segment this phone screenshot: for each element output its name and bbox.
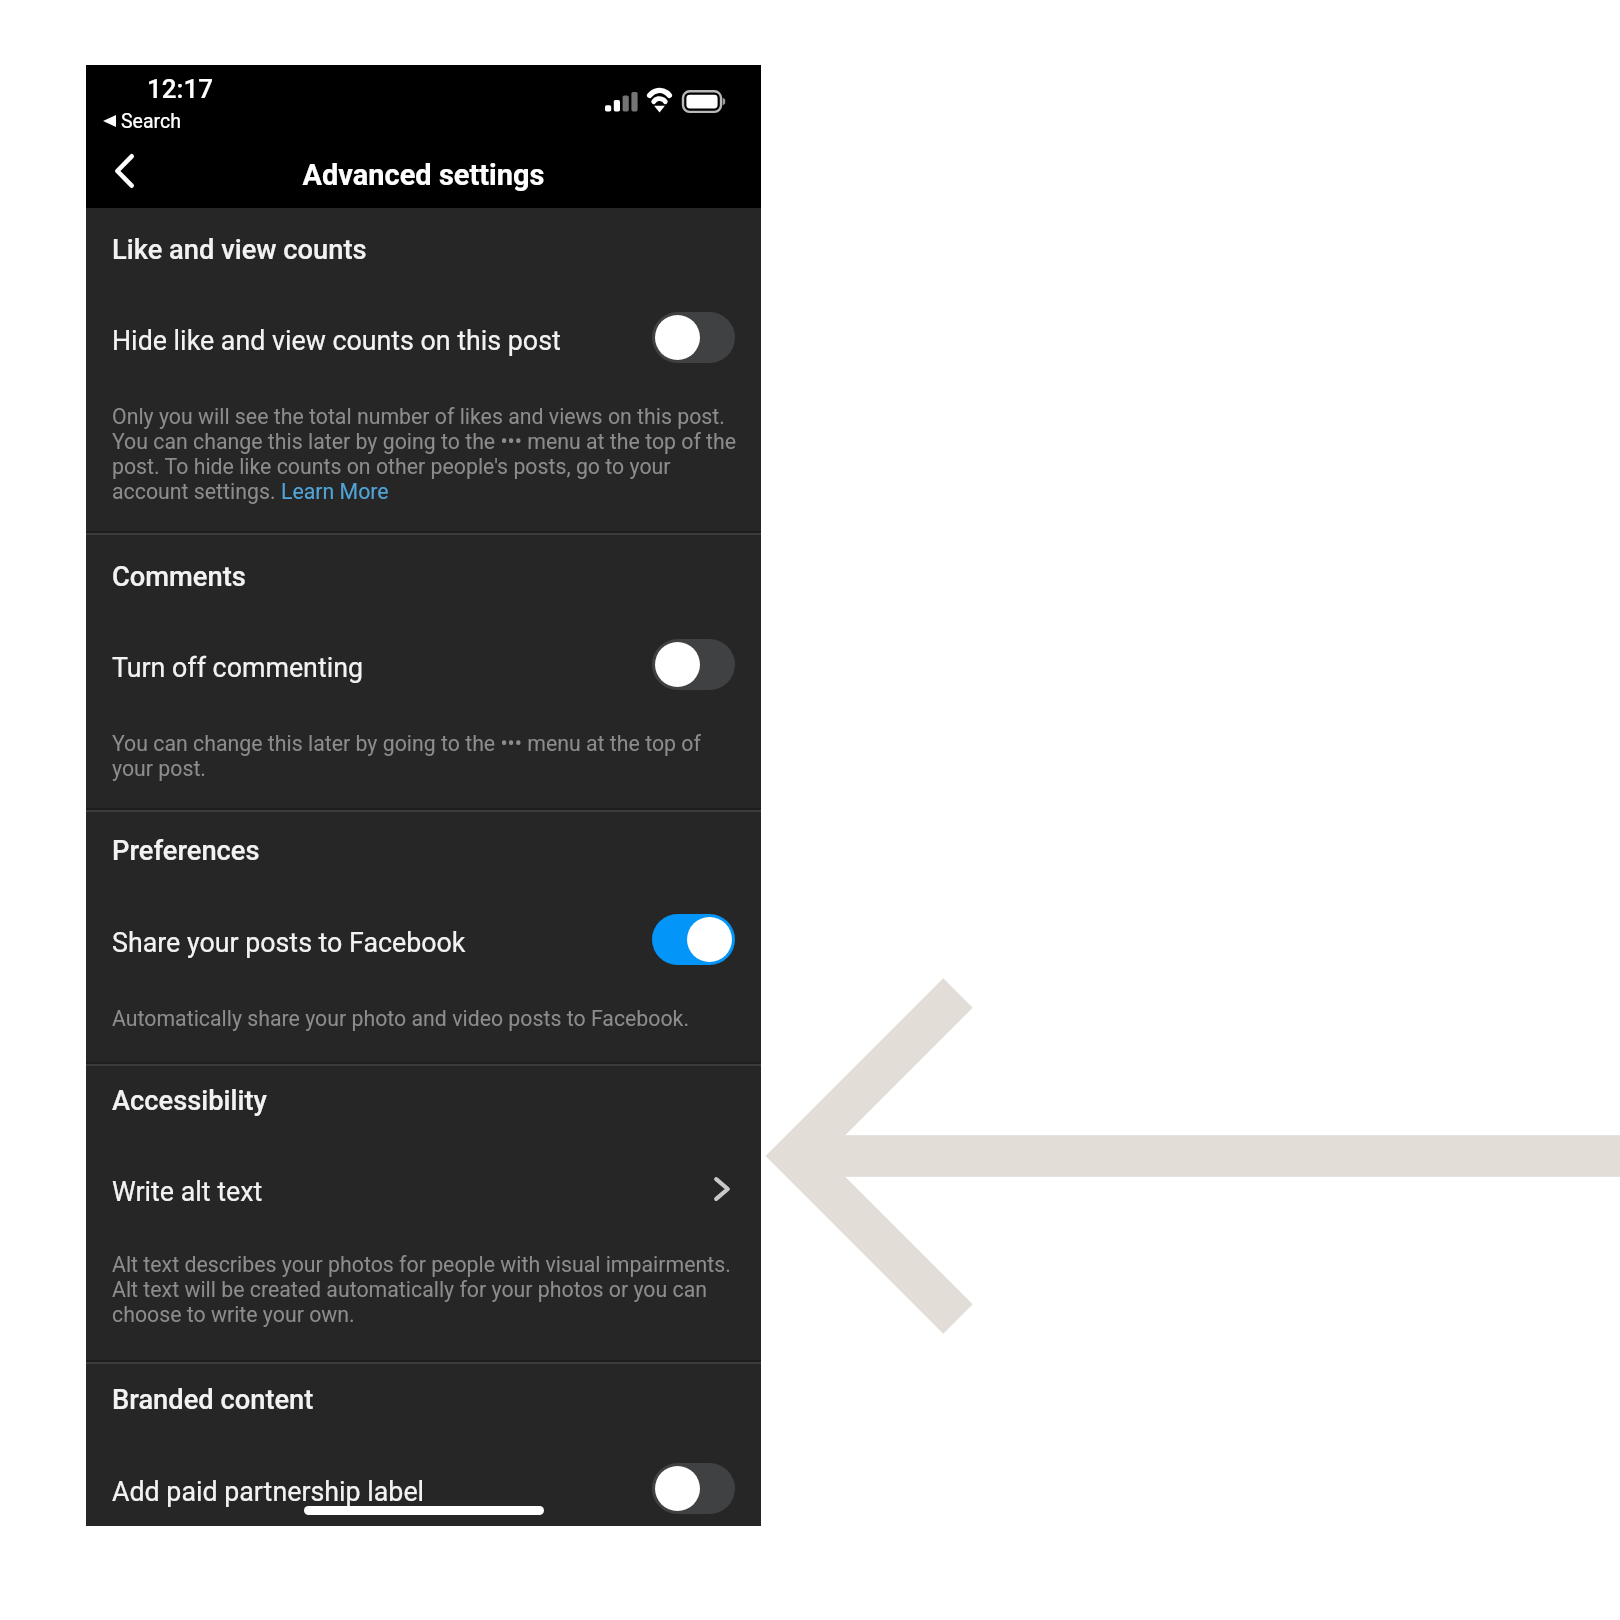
staticText: Alt text describes your photos for peopl… <box>112 1252 731 1277</box>
button[interactable]: Back <box>98 144 150 198</box>
staticText: choose to write your own. <box>112 1302 355 1327</box>
staticText: You can change this later by going to th… <box>112 731 701 756</box>
staticText: Branded content <box>112 1384 314 1416</box>
staticText: Hide like and view counts on this post <box>112 325 561 356</box>
button[interactable]: Turn off commenting <box>86 619 761 711</box>
button[interactable]: Hide like and view counts on this post, … <box>652 312 735 363</box>
staticText: Share your posts to Facebook <box>112 927 466 958</box>
button[interactable]: Hide like and view counts on this post <box>86 292 761 384</box>
button[interactable]: Search <box>101 106 174 134</box>
staticText: Search <box>121 110 181 133</box>
button[interactable]: Write alt text <box>700 1163 744 1215</box>
staticText: You can change this later by going to th… <box>112 429 737 454</box>
staticText: Accessibility <box>112 1085 267 1117</box>
staticText: 12:17 <box>147 74 213 104</box>
staticText: Advanced settings <box>86 158 761 192</box>
staticText: Write alt text <box>112 1176 263 1207</box>
staticText: Automatically share your photo and video… <box>112 1006 690 1031</box>
staticText: Like and view counts <box>112 234 367 266</box>
staticText: account settings. <box>112 479 281 504</box>
staticText: Alt text will be created automatically f… <box>112 1277 708 1302</box>
staticText: post. To hide like counts on other peopl… <box>112 454 671 479</box>
button[interactable]: Learn More <box>281 479 389 504</box>
button[interactable]: Share your posts to Facebook, on <box>652 914 735 965</box>
button[interactable]: Turn off commenting, off <box>652 639 735 690</box>
staticText: Only you will see the total number of li… <box>112 404 725 429</box>
button[interactable]: Share your posts to Facebook <box>86 894 761 986</box>
staticText: your post. <box>112 756 206 781</box>
staticText: Add paid partnership label <box>112 1476 425 1507</box>
staticText: Comments <box>112 561 246 593</box>
staticText: Turn off commenting <box>112 652 364 683</box>
button[interactable]: Write alt text <box>86 1143 761 1235</box>
button[interactable]: Add paid partnership label, off <box>652 1463 735 1514</box>
staticText: Preferences <box>112 835 260 867</box>
button[interactable]: Add paid partnership label <box>86 1443 761 1535</box>
